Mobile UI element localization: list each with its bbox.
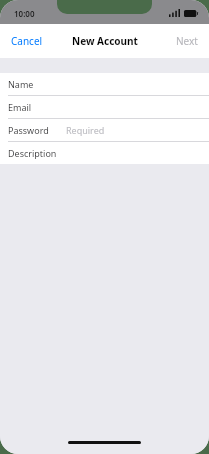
staticText: Required bbox=[66, 124, 105, 136]
button[interactable]: Email bbox=[0, 96, 209, 119]
staticText: Password bbox=[8, 124, 49, 136]
staticText: Next bbox=[176, 34, 198, 48]
staticText: 10:00 bbox=[14, 8, 35, 19]
staticText: Cancel bbox=[11, 34, 43, 48]
button[interactable]: Description bbox=[0, 142, 209, 164]
staticText: Email bbox=[8, 101, 32, 113]
button[interactable]: Cancel bbox=[0, 24, 54, 58]
staticText: New Account bbox=[72, 34, 138, 48]
staticText: Name bbox=[8, 78, 34, 90]
button[interactable]: Password bbox=[0, 119, 209, 142]
staticText: Description bbox=[8, 147, 57, 159]
button[interactable]: Name bbox=[0, 73, 209, 96]
button[interactable]: Next bbox=[165, 24, 209, 58]
